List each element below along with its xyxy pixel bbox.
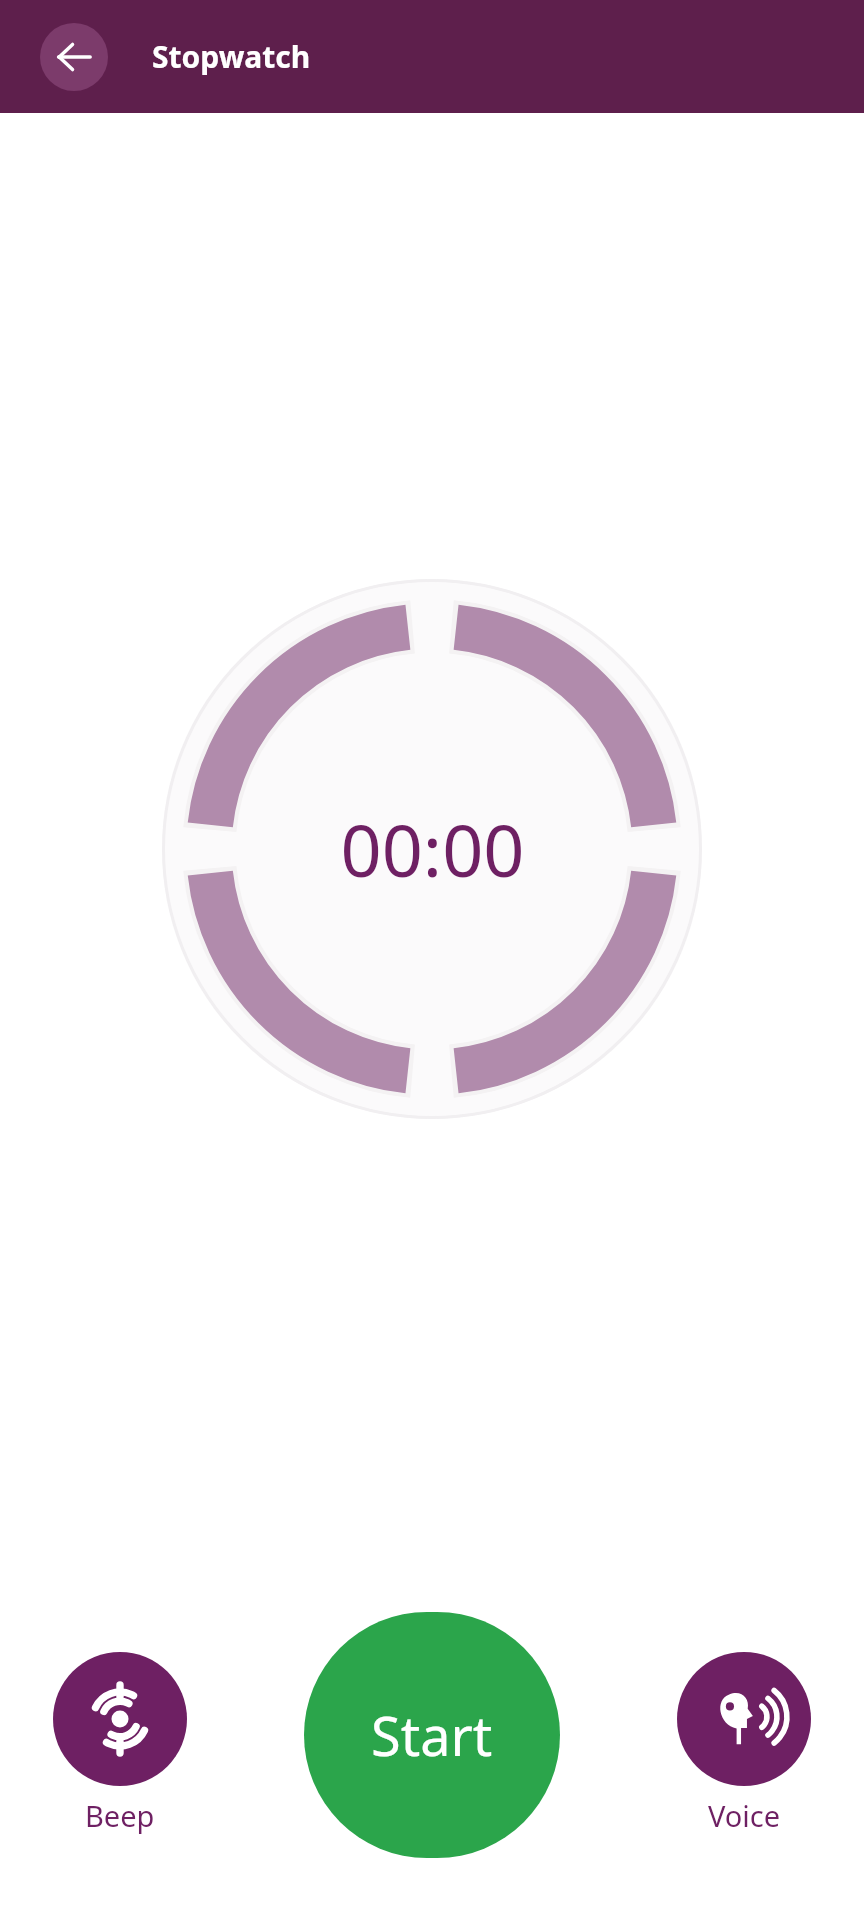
button[interactable]: Beep bbox=[53, 1652, 187, 1835]
staticText: Stopwatch bbox=[152, 36, 311, 77]
other: Beep bbox=[53, 1652, 187, 1786]
staticText: Beep bbox=[85, 1796, 155, 1835]
staticText: Start bbox=[371, 1698, 493, 1772]
button[interactable]: Back bbox=[40, 23, 108, 91]
staticText: Voice bbox=[708, 1796, 781, 1835]
button[interactable]: Start bbox=[304, 1612, 560, 1858]
staticText: 00:00 bbox=[340, 800, 525, 898]
other: Voice bbox=[677, 1652, 811, 1786]
button[interactable]: Voice bbox=[677, 1652, 811, 1835]
